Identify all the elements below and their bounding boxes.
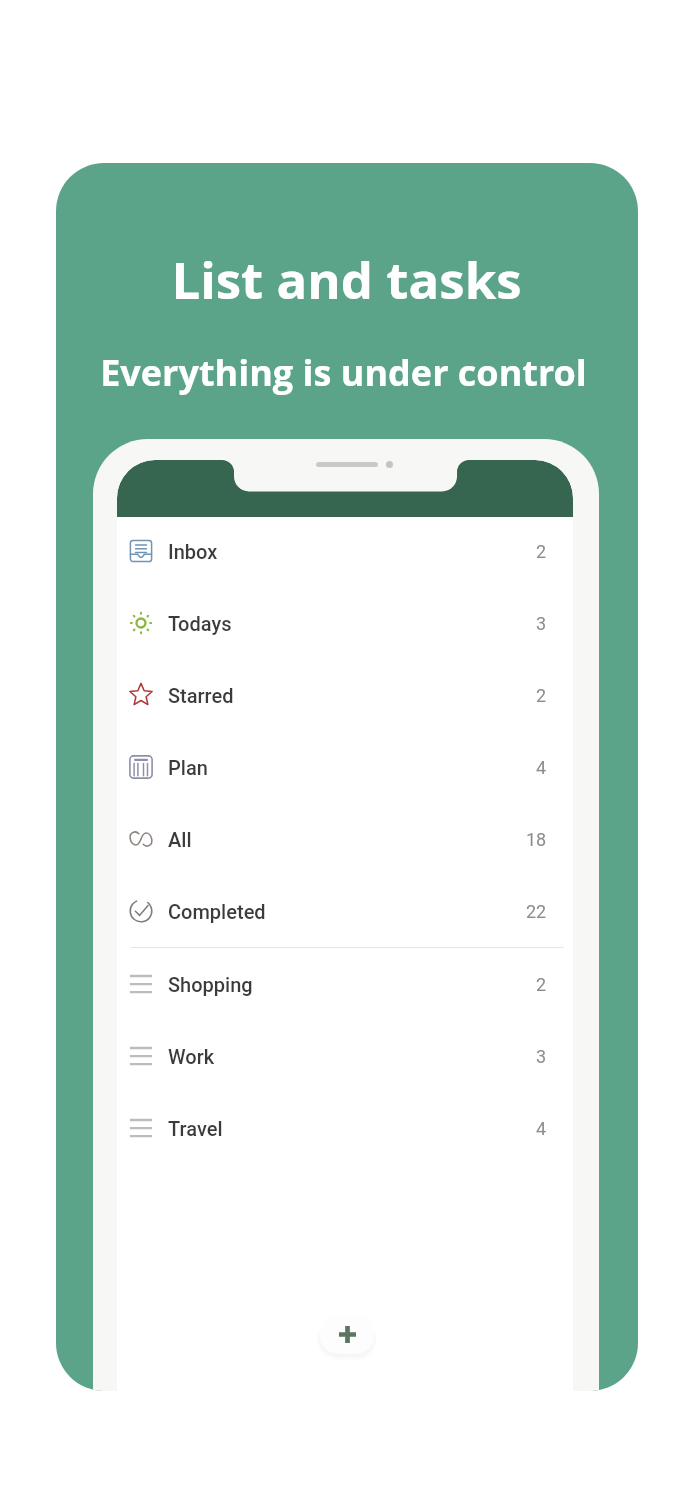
staticText: 3 xyxy=(536,1046,547,1067)
staticText: Travel xyxy=(168,1117,223,1140)
staticText: Shopping xyxy=(168,973,253,996)
button[interactable]: Starred xyxy=(117,659,573,731)
staticText: 22 xyxy=(526,901,547,922)
staticText: Work xyxy=(168,1045,215,1068)
staticText: 2 xyxy=(536,541,547,562)
staticText: Inbox xyxy=(168,540,218,563)
staticText: 18 xyxy=(526,829,547,850)
staticText: Todays xyxy=(168,612,232,635)
staticText: 2 xyxy=(536,974,547,995)
staticText: 4 xyxy=(536,1118,547,1139)
button[interactable]: Travel xyxy=(117,1092,573,1164)
button[interactable]: Work xyxy=(117,1020,573,1092)
staticText: Everything is under control xyxy=(100,348,587,397)
staticText: List and tasks xyxy=(171,244,522,313)
button[interactable]: Plan xyxy=(117,731,573,803)
button[interactable]: Inbox xyxy=(117,515,573,587)
staticText: 2 xyxy=(536,685,547,706)
staticText: Plan xyxy=(168,756,208,779)
staticText: 4 xyxy=(536,757,547,778)
button[interactable]: Shopping xyxy=(117,948,573,1020)
staticText: All xyxy=(168,828,192,851)
staticText: 3 xyxy=(536,613,547,634)
button[interactable]: Todays xyxy=(117,587,573,659)
button[interactable]: Add task xyxy=(319,1315,375,1354)
button[interactable]: Completed xyxy=(117,875,573,947)
staticText: Starred xyxy=(168,684,234,707)
button[interactable]: All xyxy=(117,803,573,875)
staticText: Completed xyxy=(168,900,266,923)
